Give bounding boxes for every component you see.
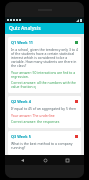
button[interactable]: Incorrect — [74, 134, 78, 138]
staticText: Correct answer: all the numbers with the… — [11, 80, 78, 89]
button[interactable]: Quiz Analysis — [5, 23, 84, 34]
staticText: Correct answer: the responses — [11, 119, 78, 124]
staticText: In a school, given the tendency only 3 t… — [11, 47, 78, 68]
button[interactable]: Recent apps — [62, 155, 72, 165]
button[interactable]: Q2 Week 4 — [8, 96, 81, 128]
staticText: Your answer: 50 interactions are fed to … — [11, 70, 78, 79]
button[interactable]: Back — [17, 155, 27, 165]
button[interactable]: Q1 Week 11 — [8, 37, 81, 93]
button[interactable]: Correct — [74, 40, 78, 44]
button[interactable]: Incorrect — [74, 99, 78, 103]
staticText: What is the best method to a company run… — [11, 141, 78, 150]
button[interactable]: Q3 Week 5 — [8, 131, 81, 155]
staticText: Q2 Week 4 — [11, 99, 74, 104]
staticText: Your answer: The underline — [11, 113, 78, 118]
staticText: Q3 Week 5 — [11, 134, 74, 139]
button[interactable]: Home — [40, 155, 50, 165]
staticText: If equal to 45 of an aggregated by 5 the… — [11, 106, 78, 111]
staticText: Quiz Analysis — [9, 25, 41, 32]
staticText: Q1 Week 11 — [11, 40, 74, 45]
